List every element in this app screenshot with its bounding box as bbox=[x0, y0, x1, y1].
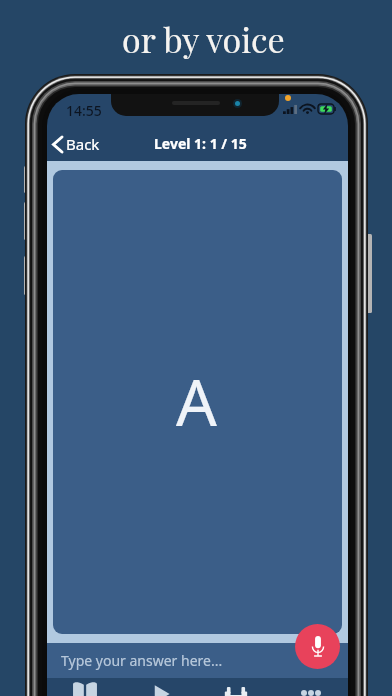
button[interactable]: Answer by voice bbox=[295, 624, 340, 669]
button[interactable]: Back bbox=[47, 130, 108, 158]
button[interactable]: Type your answer here... bbox=[47, 643, 348, 678]
staticText: 14:55 bbox=[66, 101, 102, 120]
staticText: Back bbox=[66, 134, 100, 154]
staticText: or by voice bbox=[122, 16, 285, 61]
staticText: Type your answer here... bbox=[61, 651, 223, 670]
staticText: A bbox=[176, 358, 217, 445]
button[interactable]: Lessons bbox=[47, 678, 123, 696]
button[interactable]: Play bbox=[123, 678, 198, 696]
button[interactable]: More bbox=[273, 678, 348, 696]
button[interactable]: Practice bbox=[198, 678, 273, 696]
staticText: Level 1: 1 / 15 bbox=[154, 134, 247, 153]
button[interactable]: A bbox=[53, 170, 342, 634]
